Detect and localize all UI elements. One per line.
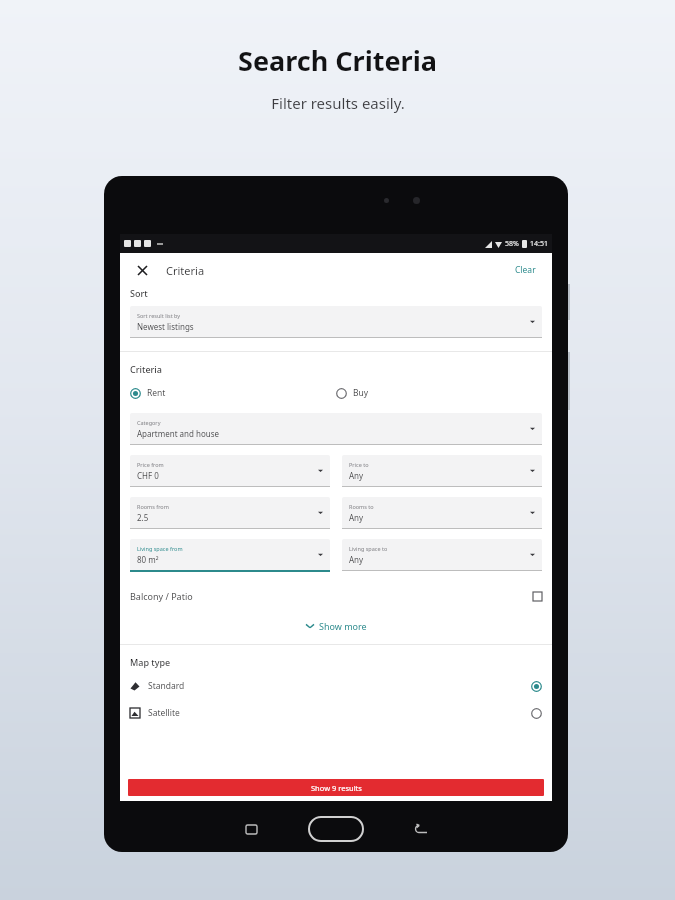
button[interactable]: Close bbox=[132, 260, 152, 280]
staticText: 14:51 bbox=[530, 239, 548, 249]
staticText: Any bbox=[349, 470, 364, 481]
button[interactable]: Rooms from bbox=[130, 497, 330, 529]
button[interactable]: Buy bbox=[336, 385, 542, 401]
staticText: 2.5 bbox=[137, 512, 149, 523]
staticText: Filter results easily. bbox=[271, 93, 405, 113]
staticText: Apartment and house bbox=[137, 428, 220, 439]
staticText: Sort result list by bbox=[137, 312, 181, 319]
staticText: Standard bbox=[148, 680, 185, 692]
staticText: Criteria bbox=[166, 263, 205, 278]
button[interactable]: Home bbox=[301, 814, 371, 844]
staticText: Criteria bbox=[130, 363, 162, 375]
staticText: Rent bbox=[147, 387, 166, 399]
button[interactable]: Show more bbox=[130, 620, 542, 632]
button[interactable]: Rent bbox=[130, 385, 336, 401]
button[interactable]: Sort result list by bbox=[130, 306, 542, 338]
button[interactable]: Price to bbox=[342, 455, 542, 487]
staticText: 80 m² bbox=[137, 554, 159, 565]
staticText: Balcony / Patio bbox=[130, 590, 193, 602]
staticText: Sort bbox=[130, 287, 148, 299]
staticText: Map type bbox=[130, 656, 171, 668]
staticText: Any bbox=[349, 512, 364, 523]
button[interactable]: Living space from bbox=[130, 539, 330, 572]
button[interactable]: Standard bbox=[130, 677, 542, 695]
button[interactable]: Price from bbox=[130, 455, 330, 487]
staticText: Rooms from bbox=[137, 503, 169, 510]
button[interactable]: Category bbox=[130, 413, 542, 445]
button[interactable]: Satellite bbox=[130, 704, 542, 722]
staticText: Living space to bbox=[349, 545, 388, 552]
button[interactable]: Living space to bbox=[342, 539, 542, 571]
button[interactable]: Recents bbox=[201, 814, 301, 844]
staticText: Search Criteria bbox=[238, 42, 437, 79]
staticText: Living space from bbox=[137, 545, 183, 552]
staticText: Any bbox=[349, 554, 364, 565]
staticText: Show 9 results bbox=[311, 783, 362, 793]
staticText: Show more bbox=[319, 620, 367, 632]
staticText: 58% bbox=[505, 239, 519, 249]
staticText: Rooms to bbox=[349, 503, 374, 510]
button[interactable]: Rooms to bbox=[342, 497, 542, 529]
button[interactable]: Back bbox=[371, 814, 471, 844]
button[interactable]: Clear bbox=[511, 260, 540, 280]
staticText: Satellite bbox=[148, 707, 180, 719]
staticText: Buy bbox=[353, 387, 369, 399]
staticText: Price from bbox=[137, 461, 164, 468]
staticText: Clear bbox=[515, 264, 536, 276]
button[interactable]: Show 9 results bbox=[128, 779, 544, 796]
staticText: Price to bbox=[349, 461, 369, 468]
staticText: Newest listings bbox=[137, 321, 194, 332]
staticText: Category bbox=[137, 419, 161, 426]
button[interactable]: Balcony / Patio bbox=[130, 586, 542, 606]
staticText: CHF 0 bbox=[137, 470, 159, 481]
